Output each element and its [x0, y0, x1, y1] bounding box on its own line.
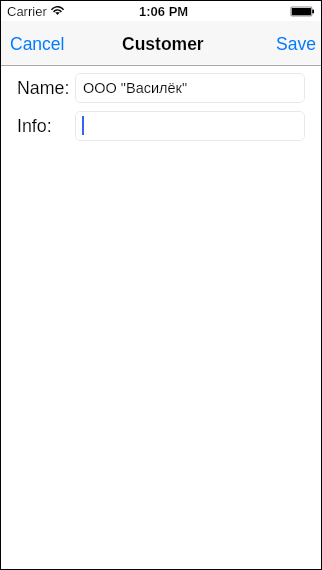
staticText: 1:06 PM [139, 4, 189, 19]
other: Wi-Fi signal [51, 6, 64, 15]
button[interactable]: Cancel [0, 28, 75, 60]
staticText: Save [276, 34, 316, 54]
staticText: Info: [17, 116, 52, 136]
staticText: Name: [17, 78, 70, 98]
button[interactable] [75, 111, 305, 141]
staticText: OOO "Василёк" [83, 80, 188, 96]
button[interactable]: Save [266, 28, 322, 60]
staticText: Carrier [7, 4, 47, 19]
staticText: Cancel [10, 34, 65, 54]
staticText: Customer [122, 34, 204, 54]
other: Battery full [291, 7, 314, 16]
button[interactable]: OOO "Василёк" [75, 73, 305, 103]
